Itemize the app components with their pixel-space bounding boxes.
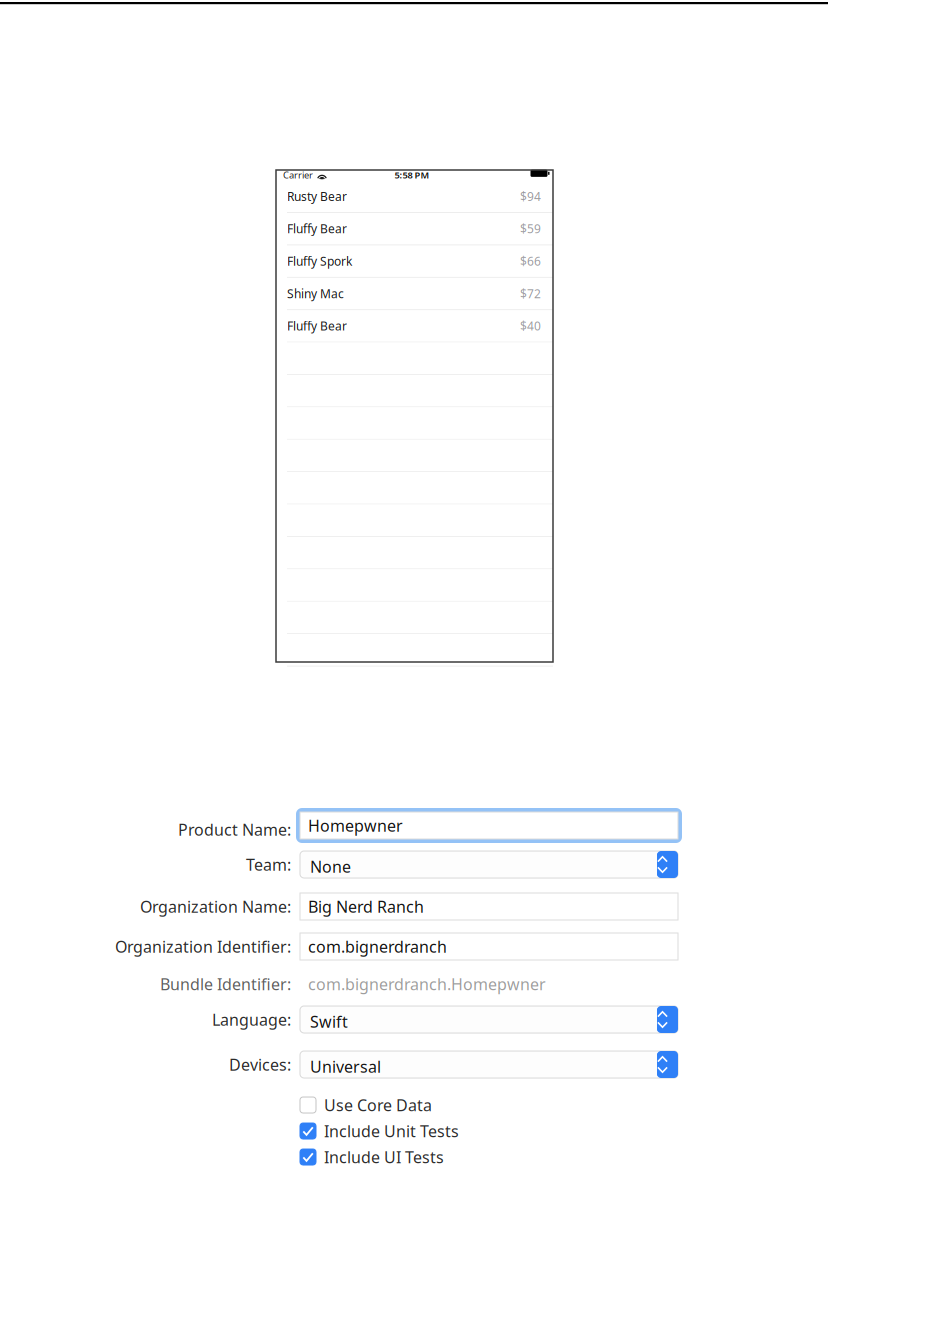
staticText: Fluffy Spork [287, 253, 352, 269]
staticText: $40 [520, 318, 541, 334]
staticText: Shiny Mac [287, 285, 344, 301]
staticText: Fluffy Bear [287, 318, 347, 334]
staticText: Team: [246, 854, 291, 875]
staticText: Include Unit Tests [324, 1120, 459, 1142]
staticText: Use Core Data [324, 1094, 432, 1116]
button[interactable]: Universal [300, 1051, 678, 1078]
staticText: Homepwner [308, 815, 403, 836]
button[interactable]: Include UI Tests [300, 1146, 530, 1168]
button[interactable]: Fluffy Spork [276, 245, 553, 278]
button[interactable]: Fluffy Bear [276, 310, 553, 342]
staticText: Universal [310, 1056, 381, 1077]
staticText: com.bignerdranch [308, 936, 447, 957]
staticText: Bundle Identifier: [160, 973, 291, 995]
staticText: Swift [310, 1011, 348, 1032]
staticText: Organization Name: [140, 896, 291, 917]
staticText: Organization Identifier: [115, 936, 291, 957]
staticText: Fluffy Bear [287, 221, 347, 237]
staticText: com.bignerdranch.Homepwner [308, 973, 546, 995]
button[interactable]: None [300, 851, 678, 878]
staticText: $72 [520, 285, 541, 301]
staticText: Language: [212, 1009, 291, 1030]
button[interactable]: Homepwner [300, 812, 686, 847]
staticText: $94 [520, 188, 541, 204]
button[interactable]: Rusty Bear [276, 180, 553, 213]
button[interactable]: Shiny Mac [276, 278, 553, 310]
staticText: $59 [520, 221, 541, 237]
button[interactable]: Fluffy Bear [276, 213, 553, 245]
staticText: Include UI Tests [324, 1146, 444, 1168]
staticText: 5:58 PM [394, 169, 429, 181]
staticText: Carrier [283, 169, 313, 181]
staticText: None [310, 856, 351, 877]
staticText: Product Name: [178, 819, 291, 840]
button[interactable]: Use Core Data [300, 1094, 530, 1116]
staticText: $66 [520, 253, 541, 269]
staticText: Devices: [229, 1054, 291, 1075]
button[interactable]: Swift [300, 1006, 678, 1033]
staticText: Big Nerd Ranch [308, 896, 424, 917]
staticText: Rusty Bear [287, 188, 347, 204]
button[interactable]: Include Unit Tests [300, 1120, 530, 1142]
